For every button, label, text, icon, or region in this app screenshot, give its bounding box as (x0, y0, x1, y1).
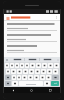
button[interactable] (36, 63, 41, 68)
button[interactable] (22, 75, 27, 80)
button[interactable]: Navigate up (4, 14, 11, 21)
button[interactable] (29, 69, 34, 74)
button[interactable] (34, 75, 39, 80)
button[interactable] (40, 57, 55, 62)
button[interactable]: More options (53, 14, 60, 21)
button[interactable] (10, 57, 25, 62)
button[interactable] (12, 81, 18, 86)
button[interactable] (7, 45, 57, 47)
button[interactable] (5, 63, 9, 68)
button[interactable] (10, 63, 14, 68)
button[interactable]: Recent apps (41, 87, 60, 93)
button[interactable] (42, 63, 47, 68)
button[interactable]: Back (4, 87, 22, 93)
button[interactable] (7, 38, 57, 42)
button[interactable] (7, 23, 57, 25)
button[interactable] (41, 69, 46, 74)
button[interactable]: Emoji (4, 57, 10, 62)
button[interactable] (6, 69, 10, 74)
button[interactable] (54, 63, 59, 68)
button[interactable] (23, 69, 28, 74)
button[interactable] (12, 75, 16, 80)
button[interactable] (11, 14, 53, 21)
button[interactable] (28, 75, 33, 80)
button[interactable]: Shift (5, 75, 11, 80)
button[interactable] (48, 63, 53, 68)
button[interactable] (15, 63, 19, 68)
button[interactable] (30, 63, 35, 68)
button[interactable] (17, 69, 22, 74)
button[interactable]: Enter (51, 81, 59, 86)
button[interactable]: Backspace (52, 75, 59, 80)
button[interactable]: Symbols (5, 81, 11, 86)
button[interactable] (7, 34, 57, 36)
button[interactable] (46, 75, 51, 80)
button[interactable] (47, 69, 52, 74)
button[interactable] (7, 49, 57, 53)
button[interactable] (35, 69, 40, 74)
button[interactable] (44, 81, 50, 86)
button[interactable] (17, 75, 21, 80)
button[interactable] (53, 69, 58, 74)
button[interactable]: More suggestions (55, 57, 60, 62)
button[interactable] (11, 69, 16, 74)
button[interactable]: Home (22, 87, 41, 93)
button[interactable] (25, 57, 40, 62)
button[interactable] (40, 75, 45, 80)
button[interactable]: Space (19, 81, 43, 86)
button[interactable] (20, 63, 24, 68)
button[interactable] (7, 27, 57, 31)
button[interactable] (25, 63, 29, 68)
